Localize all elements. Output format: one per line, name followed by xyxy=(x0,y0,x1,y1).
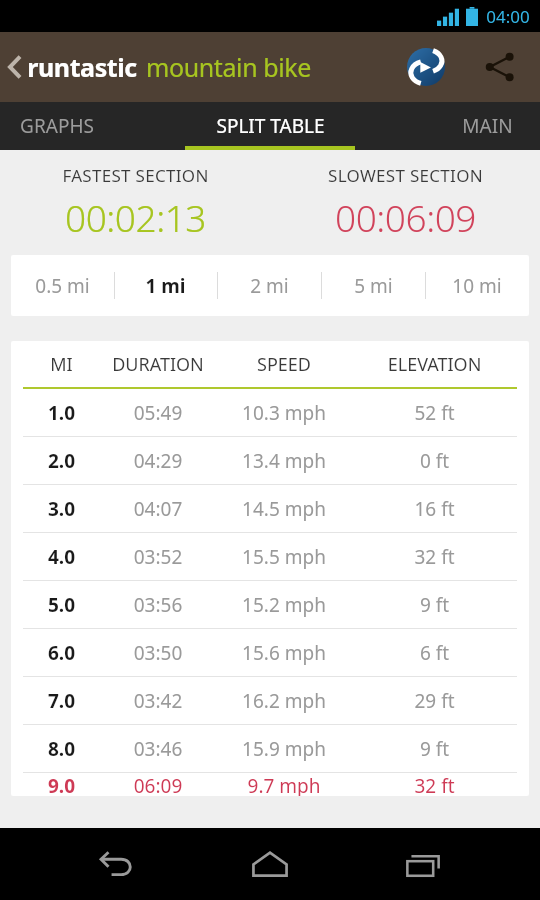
button[interactable]: GRAPHS xyxy=(0,102,142,150)
button[interactable]: 0.5 mi xyxy=(11,255,114,316)
button[interactable]: 9.0 xyxy=(11,773,529,796)
staticText: 8.0 xyxy=(23,736,100,762)
staticText: 15.6 mph xyxy=(216,640,352,666)
staticText: SPEED xyxy=(216,352,352,377)
button[interactable]: 6.0 xyxy=(11,629,529,676)
staticText: FASTEST SECTION xyxy=(62,164,209,187)
staticText: 0.5 mi xyxy=(35,273,90,299)
staticText: 15.9 mph xyxy=(216,736,352,762)
button[interactable]: Back xyxy=(81,828,153,900)
staticText: 10 mi xyxy=(452,273,502,299)
staticText: 5.0 xyxy=(23,592,100,618)
staticText: 4.0 xyxy=(23,544,100,570)
staticText: 13.4 mph xyxy=(216,448,352,474)
button[interactable]: Map xyxy=(400,41,452,93)
staticText: 29 ft xyxy=(352,688,517,714)
staticText: ELEVATION xyxy=(352,352,517,377)
staticText: MI xyxy=(23,352,100,377)
button[interactable]: 2 mi xyxy=(217,255,321,316)
staticText: 6 ft xyxy=(352,640,517,666)
button[interactable]: 1.0 xyxy=(11,389,529,436)
button[interactable]: SPLIT TABLE xyxy=(185,102,355,150)
button[interactable]: Share xyxy=(474,41,526,93)
staticText: 00:06:09 xyxy=(335,192,476,242)
button[interactable]: MAIN xyxy=(402,102,540,150)
staticText: 10.3 mph xyxy=(216,400,352,426)
staticText: 2 mi xyxy=(250,273,289,299)
button[interactable]: 2.0 xyxy=(11,437,529,484)
button[interactable]: runtastic xyxy=(6,50,311,84)
staticText: 52 ft xyxy=(352,400,517,426)
staticText: 1 mi xyxy=(145,273,186,299)
staticText: 3.0 xyxy=(23,496,100,522)
staticText: SPLIT TABLE xyxy=(216,113,325,139)
staticText: 0 ft xyxy=(352,448,517,474)
staticText: 03:50 xyxy=(100,640,216,666)
staticText: 04:29 xyxy=(100,448,216,474)
staticText: 9 ft xyxy=(352,592,517,618)
staticText: 00:02:13 xyxy=(65,192,206,242)
button[interactable]: 8.0 xyxy=(11,725,529,772)
staticText: 16 ft xyxy=(352,496,517,522)
staticText: 7.0 xyxy=(23,688,100,714)
staticText: 14.5 mph xyxy=(216,496,352,522)
staticText: 6.0 xyxy=(23,640,100,666)
staticText: MAIN xyxy=(462,113,513,139)
staticText: 9.7 mph xyxy=(216,773,352,796)
staticText: 05:49 xyxy=(100,400,216,426)
staticText: 03:46 xyxy=(100,736,216,762)
staticText: 03:42 xyxy=(100,688,216,714)
button[interactable]: 1 mi xyxy=(114,255,217,316)
staticText: 32 ft xyxy=(352,544,517,570)
button[interactable]: 5 mi xyxy=(321,255,425,316)
staticText: 04:00 xyxy=(486,5,530,28)
button[interactable]: 7.0 xyxy=(11,677,529,724)
staticText: runtastic xyxy=(27,50,137,84)
staticText: 9.0 xyxy=(23,773,100,796)
staticText: 32 ft xyxy=(352,773,517,796)
button[interactable]: 4.0 xyxy=(11,533,529,580)
staticText: 16.2 mph xyxy=(216,688,352,714)
staticText: 9 ft xyxy=(352,736,517,762)
staticText: 15.2 mph xyxy=(216,592,352,618)
button[interactable]: 5.0 xyxy=(11,581,529,628)
staticText: GRAPHS xyxy=(20,113,94,139)
staticText: 06:09 xyxy=(100,773,216,796)
staticText: SLOWEST SECTION xyxy=(328,164,483,187)
staticText: DURATION xyxy=(100,352,216,377)
button[interactable]: 10 mi xyxy=(425,255,529,316)
button[interactable]: Home xyxy=(234,828,306,900)
button[interactable]: 3.0 xyxy=(11,485,529,532)
staticText: 04:07 xyxy=(100,496,216,522)
staticText: 1.0 xyxy=(23,400,100,426)
staticText: 03:52 xyxy=(100,544,216,570)
staticText: 2.0 xyxy=(23,448,100,474)
button[interactable]: Recent apps xyxy=(387,828,459,900)
staticText: 15.5 mph xyxy=(216,544,352,570)
staticText: 03:56 xyxy=(100,592,216,618)
staticText: 5 mi xyxy=(354,273,393,299)
staticText: mountain bike xyxy=(146,50,311,84)
